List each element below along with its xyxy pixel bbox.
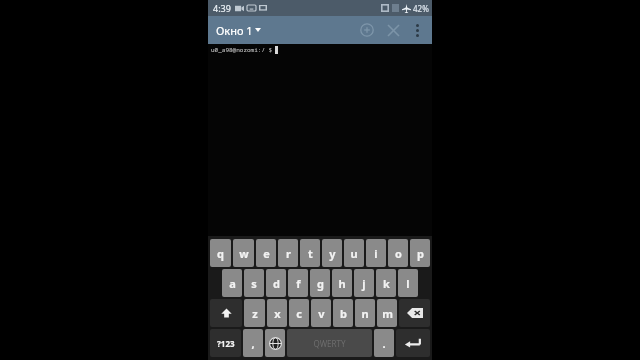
staticText: r xyxy=(286,246,291,261)
staticText: s xyxy=(251,276,257,291)
button[interactable]: d xyxy=(266,269,286,297)
staticText: u xyxy=(350,246,358,261)
staticText: a xyxy=(229,276,236,291)
button[interactable]: . xyxy=(374,329,394,357)
staticText: f xyxy=(296,276,301,291)
staticText: g xyxy=(317,276,324,291)
button[interactable]: f xyxy=(288,269,308,297)
button[interactable]: , xyxy=(243,329,263,357)
staticText: i xyxy=(374,246,378,261)
staticText: l xyxy=(406,276,410,291)
button[interactable]: s xyxy=(244,269,264,297)
button[interactable]: w xyxy=(233,239,254,267)
staticText: w xyxy=(239,246,249,261)
button[interactable]: k xyxy=(376,269,396,297)
staticText: z xyxy=(252,306,258,321)
button[interactable]: v xyxy=(311,299,331,327)
staticText: u0_a98@nozomi:/ $ xyxy=(211,46,273,54)
staticText: e xyxy=(263,246,270,261)
staticText: v xyxy=(318,306,325,321)
button[interactable]: t xyxy=(300,239,320,267)
staticText: b xyxy=(340,306,347,321)
button[interactable]: g xyxy=(310,269,330,297)
staticText: q xyxy=(217,246,224,261)
button[interactable]: e xyxy=(256,239,276,267)
button[interactable]: Symbols xyxy=(210,329,241,357)
staticText: k xyxy=(383,276,390,291)
button[interactable]: o xyxy=(388,239,408,267)
button[interactable]: c xyxy=(289,299,309,327)
button[interactable]: b xyxy=(333,299,353,327)
button[interactable]: u xyxy=(344,239,364,267)
staticText: x xyxy=(274,306,281,321)
staticText: 4:39 xyxy=(213,2,231,14)
button[interactable]: Change language xyxy=(265,329,285,357)
button[interactable]: j xyxy=(354,269,374,297)
button[interactable]: Shift xyxy=(210,299,242,327)
staticText: d xyxy=(273,276,280,291)
button[interactable]: QWERTY xyxy=(287,329,372,357)
button[interactable]: n xyxy=(355,299,375,327)
staticText: j xyxy=(362,276,366,291)
button[interactable]: x xyxy=(267,299,287,327)
button[interactable]: y xyxy=(322,239,342,267)
button[interactable]: More options xyxy=(406,19,428,41)
staticText: m xyxy=(382,306,393,321)
button[interactable]: Close session xyxy=(380,17,406,43)
staticText: h xyxy=(338,276,346,291)
button[interactable]: New session xyxy=(354,17,380,43)
staticText: o xyxy=(395,246,402,261)
button[interactable]: Backspace xyxy=(399,299,430,327)
button[interactable]: h xyxy=(332,269,352,297)
button[interactable]: i xyxy=(366,239,386,267)
staticText: . xyxy=(382,336,386,351)
button[interactable]: l xyxy=(398,269,418,297)
staticText: c xyxy=(296,306,302,321)
button[interactable]: Enter xyxy=(396,329,430,357)
button[interactable]: q xyxy=(210,239,231,267)
staticText: n xyxy=(361,306,369,321)
staticText: t xyxy=(308,246,313,261)
staticText: ?123 xyxy=(217,338,235,349)
staticText: Окно 1 xyxy=(216,23,253,38)
button[interactable]: r xyxy=(278,239,298,267)
staticText: p xyxy=(417,246,424,261)
staticText: QWERTY xyxy=(313,338,346,349)
staticText: , xyxy=(251,336,255,351)
button[interactable]: a xyxy=(222,269,242,297)
button[interactable]: p xyxy=(410,239,430,267)
button[interactable]: Окно 1 xyxy=(216,16,261,44)
staticText: y xyxy=(329,246,336,261)
button[interactable]: m xyxy=(377,299,397,327)
staticText: 42% xyxy=(413,3,429,14)
button[interactable]: z xyxy=(244,299,265,327)
